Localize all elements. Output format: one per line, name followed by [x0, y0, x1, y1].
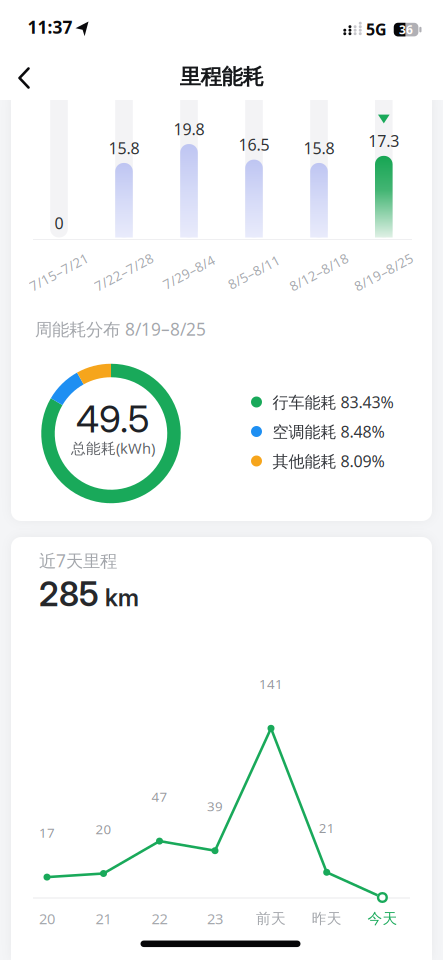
staticText: 8/19–8/25: [351, 263, 416, 281]
staticText: 22: [151, 909, 167, 928]
staticText: 19.8: [173, 118, 204, 140]
staticText: 39: [207, 797, 223, 815]
staticText: 17.3: [368, 130, 399, 151]
staticText: 5G: [366, 19, 387, 40]
staticText: 141: [259, 675, 283, 693]
staticText: 7/22–7/28: [91, 263, 156, 281]
staticText: 8/5–8/11: [225, 263, 282, 281]
staticText: 行车能耗 83.43%: [272, 391, 393, 413]
staticText: 20: [39, 909, 55, 928]
staticText: 23: [207, 909, 223, 928]
staticText: 15.8: [108, 137, 139, 158]
button[interactable]: 周 8/5–8/11: [241, 96, 267, 240]
staticText: 7/15–7/21: [26, 263, 91, 281]
staticText: 周能耗分布 8/19–8/25: [35, 317, 206, 340]
staticText: 36: [399, 22, 413, 37]
staticText: 15.8: [303, 137, 334, 158]
button[interactable]: 周 8/12–8/18: [306, 96, 332, 240]
button[interactable]: 周 7/15–7/21: [46, 96, 72, 240]
staticText: 49.5: [76, 396, 150, 442]
button[interactable]: 周 7/22–7/28: [111, 96, 137, 240]
staticText: 总能耗(kWh): [71, 438, 155, 458]
staticText: 21: [319, 819, 335, 837]
staticText: 285: [39, 574, 99, 614]
staticText: 21: [95, 909, 111, 928]
button[interactable]: Back: [15, 59, 47, 97]
staticText: 7/29–8/4: [160, 263, 217, 281]
staticText: 前天: [256, 909, 286, 927]
button[interactable]: 周 7/29–8/4: [176, 96, 202, 240]
staticText: 16.5: [238, 134, 269, 155]
staticText: 20: [95, 820, 111, 838]
button[interactable]: 周 8/19–8/25: [371, 96, 397, 240]
staticText: 11:37: [27, 15, 72, 38]
staticText: 今天: [367, 909, 397, 927]
staticText: 47: [151, 788, 167, 805]
staticText: 昨天: [312, 909, 342, 927]
staticText: 其他能耗 8.09%: [272, 450, 384, 472]
staticText: 里程能耗: [179, 64, 263, 90]
staticText: 8/12–8/18: [286, 263, 351, 281]
staticText: km: [105, 583, 139, 612]
staticText: 17: [39, 824, 55, 841]
staticText: 0: [54, 212, 63, 234]
staticText: 近7天里程: [39, 549, 117, 572]
staticText: 空调能耗 8.48%: [272, 421, 384, 442]
